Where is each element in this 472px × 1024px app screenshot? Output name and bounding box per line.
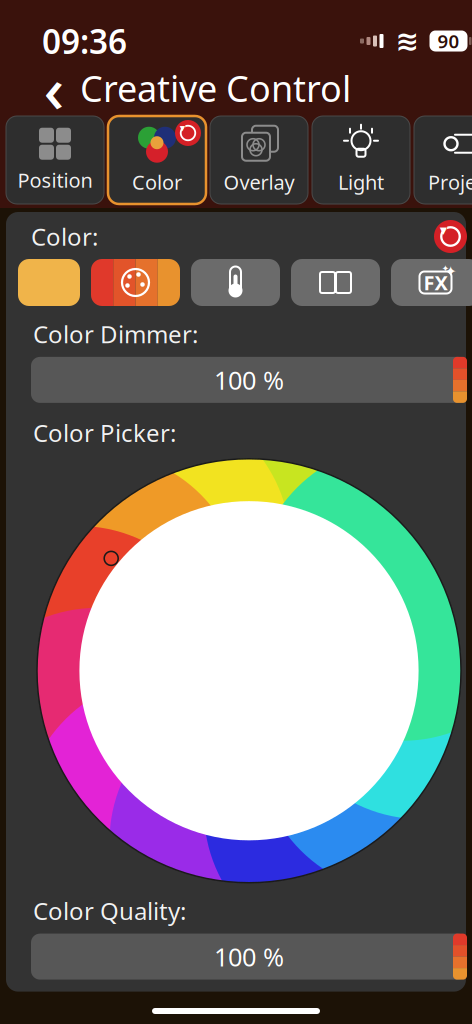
button[interactable]: Current color [18, 259, 80, 306]
button[interactable]: Color [108, 116, 206, 204]
staticText: ✦ [441, 263, 449, 274]
button[interactable]: Light [312, 116, 410, 204]
staticText: Color [132, 169, 182, 195]
staticText: Color Picker: [33, 417, 176, 449]
button[interactable]: Back [36, 66, 72, 110]
staticText: ✦ [444, 263, 456, 280]
staticText: ≋ [395, 25, 418, 57]
button[interactable] [291, 259, 380, 306]
staticText: Light [338, 169, 384, 195]
staticText: ‹ [43, 45, 64, 130]
button[interactable]: Color picker wheel [37, 459, 461, 883]
staticText: Color: [31, 221, 98, 252]
button[interactable] [191, 259, 280, 306]
button[interactable]: Projecti [414, 116, 472, 204]
staticText: Creative Control [80, 64, 351, 112]
button[interactable]: FX [391, 259, 472, 306]
button[interactable]: Overlay [210, 116, 308, 204]
staticText: ▾ [440, 222, 447, 238]
staticText: Overlay [223, 169, 294, 195]
button[interactable] [91, 259, 180, 306]
button[interactable]: Reset [434, 220, 467, 253]
staticText: FX [423, 269, 447, 296]
button[interactable]: 100 % [31, 357, 467, 403]
staticText: Projecti [428, 169, 472, 195]
staticText: Position [17, 167, 92, 193]
staticText: Color Quality: [33, 895, 186, 927]
button[interactable]: Position [6, 116, 104, 204]
staticText: ▾ [180, 122, 185, 134]
staticText: Color Dimmer: [33, 318, 198, 350]
staticText: 100 % [214, 363, 284, 397]
staticText: 90 [437, 29, 459, 53]
staticText: 09:36 [42, 19, 127, 63]
button[interactable]: Reset [175, 120, 201, 146]
staticText: 100 % [214, 940, 284, 973]
button[interactable]: 100 % [31, 934, 467, 980]
